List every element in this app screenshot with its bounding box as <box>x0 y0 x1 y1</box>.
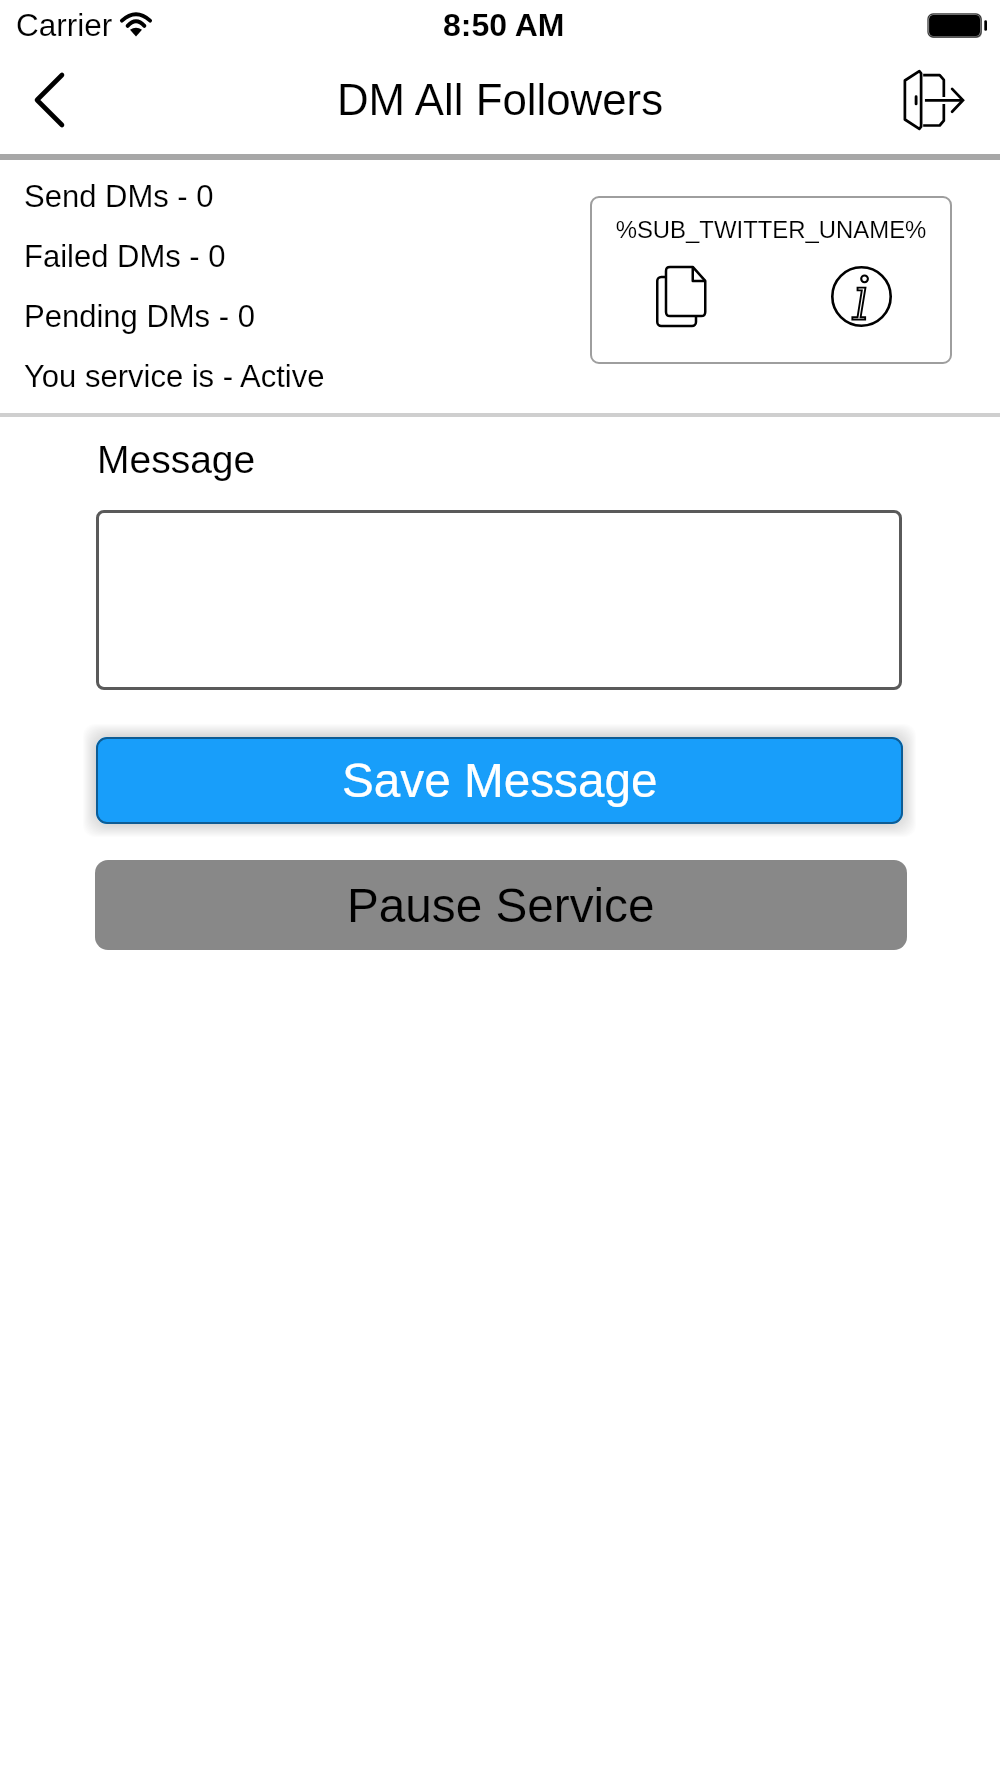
button[interactable]: Log out <box>888 55 978 145</box>
staticText: Message <box>97 438 256 482</box>
staticText: Pause Service <box>347 879 655 932</box>
button[interactable]: Info <box>826 260 896 332</box>
staticText: Save Message <box>342 754 658 807</box>
staticText: You service is - Active <box>24 359 325 394</box>
staticText: Pending DMs - 0 <box>24 299 255 334</box>
button[interactable]: Save Message <box>96 737 903 824</box>
button[interactable]: Copy username <box>646 260 716 332</box>
staticText: DM All Followers <box>0 75 1000 124</box>
staticText: %SUB_TWITTER_UNAME% <box>590 216 952 243</box>
button[interactable]: Pause Service <box>95 860 907 950</box>
staticText: Send DMs - 0 <box>24 179 214 214</box>
button[interactable]: Message text field <box>96 510 902 690</box>
button[interactable]: Back <box>5 55 97 147</box>
staticText: 8:50 AM <box>443 7 565 43</box>
staticText: Carrier <box>16 7 113 42</box>
staticText: Failed DMs - 0 <box>24 239 226 274</box>
